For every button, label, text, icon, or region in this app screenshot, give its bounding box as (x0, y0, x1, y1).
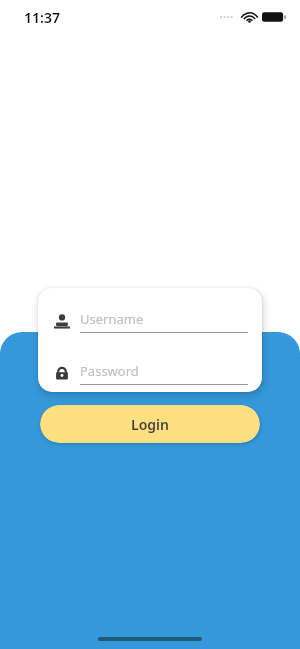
other: Password (54, 365, 70, 381)
staticText: Login (131, 415, 169, 434)
staticText: Password (80, 362, 139, 380)
staticText: Username (80, 310, 144, 328)
button[interactable]: Login (40, 405, 260, 443)
staticText: 11:37 (24, 8, 60, 27)
button[interactable]: Username (38, 306, 262, 336)
other: Username (53, 312, 71, 330)
button[interactable]: Password (38, 358, 262, 388)
